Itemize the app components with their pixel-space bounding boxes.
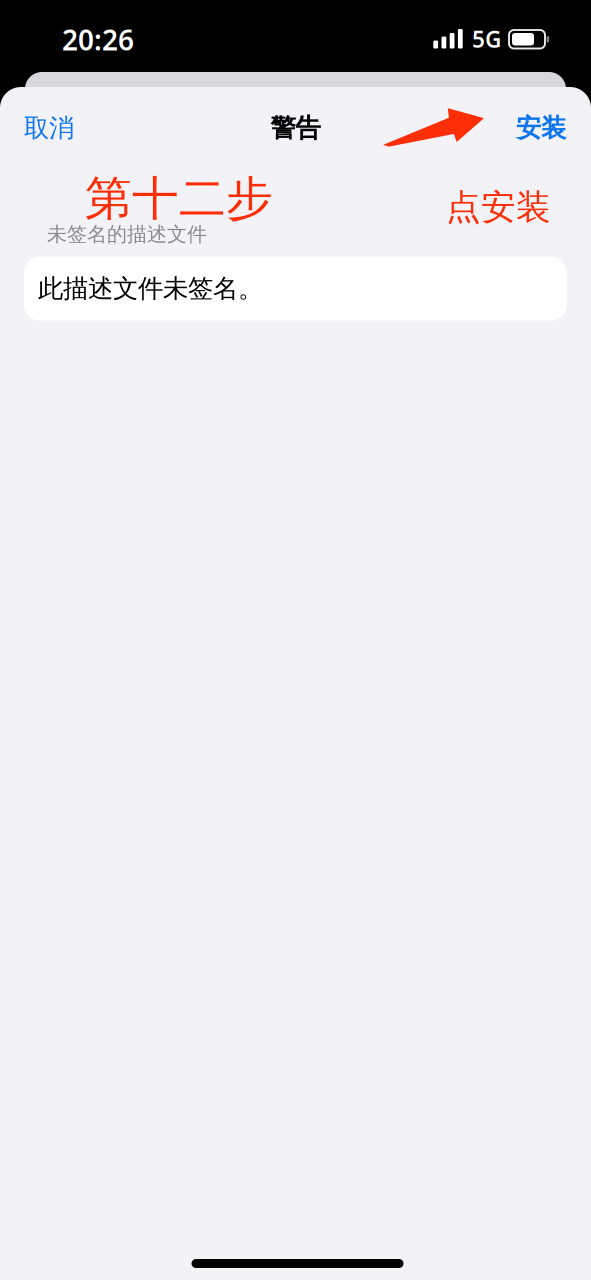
staticText: 未签名的描述文件	[47, 222, 207, 247]
staticText: 5G	[472, 24, 501, 54]
staticText: 20:26	[62, 21, 134, 58]
button[interactable]: 取消	[20, 100, 78, 155]
staticText: 取消	[24, 112, 74, 143]
staticText: 警告	[270, 112, 320, 143]
button[interactable]: 安装	[512, 100, 570, 155]
staticText: 点安装	[446, 186, 551, 229]
staticText: 第十二步	[85, 170, 273, 227]
staticText: 安装	[516, 112, 566, 143]
staticText: 此描述文件未签名。	[38, 273, 263, 304]
